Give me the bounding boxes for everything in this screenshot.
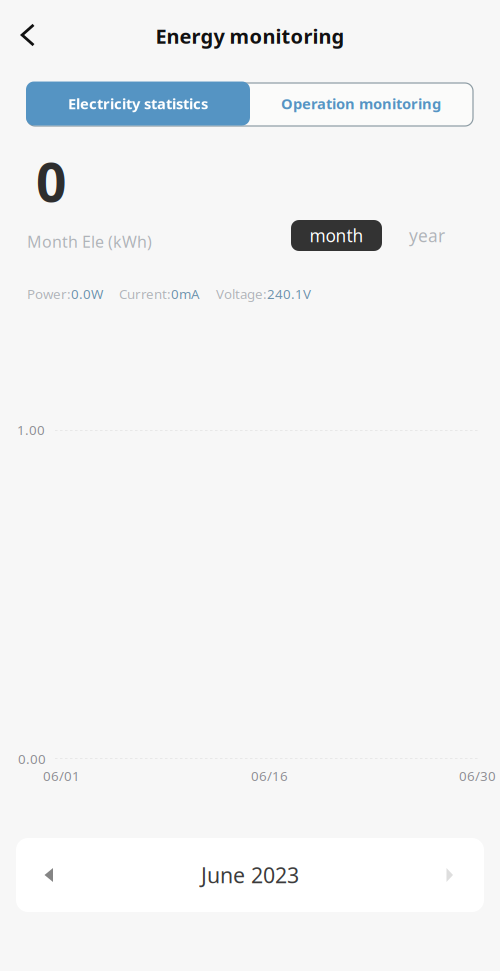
- staticText: Energy monitoring: [155, 23, 344, 49]
- staticText: Operation monitoring: [281, 94, 441, 113]
- staticText: 06/01: [43, 767, 80, 785]
- staticText: 0.0W: [71, 285, 103, 303]
- button[interactable]: Previous month: [16, 838, 82, 912]
- button[interactable]: Back: [6, 13, 50, 57]
- staticText: 1.00: [17, 421, 45, 439]
- staticText: June 2023: [201, 861, 299, 889]
- staticText: Electricity statistics: [68, 94, 208, 113]
- staticText: Power:: [27, 285, 71, 303]
- button[interactable]: Operation monitoring: [250, 82, 472, 125]
- staticText: year: [409, 224, 445, 247]
- staticText: Month Ele (kWh): [27, 231, 152, 252]
- staticText: Current:: [119, 285, 171, 303]
- staticText: 06/30: [459, 767, 496, 785]
- button[interactable]: year: [382, 220, 472, 251]
- staticText: Voltage:: [216, 285, 267, 303]
- button[interactable]: Next month: [418, 838, 484, 912]
- staticText: 0.00: [18, 750, 46, 768]
- staticText: 240.1V: [267, 285, 311, 303]
- button[interactable]: month: [291, 220, 382, 251]
- staticText: 06/16: [251, 767, 288, 785]
- button[interactable]: Electricity statistics: [26, 81, 250, 125]
- staticText: 0: [36, 146, 67, 217]
- staticText: 0mA: [171, 285, 200, 303]
- staticText: month: [309, 224, 363, 247]
